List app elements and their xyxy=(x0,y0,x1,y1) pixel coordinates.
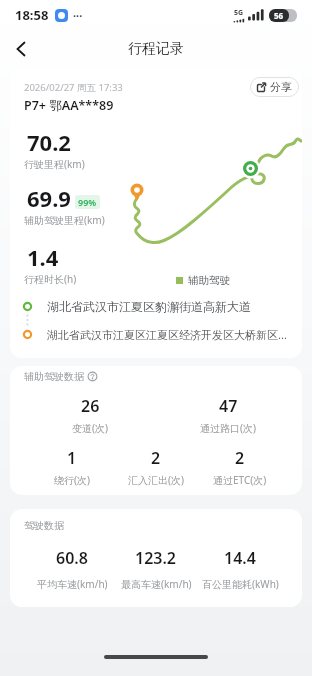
staticText: 2026/02/27 周五 17:33 xyxy=(24,81,123,94)
staticText: 18:58 xyxy=(15,6,49,24)
staticText: 60.8 xyxy=(56,547,88,569)
staticText: 99% xyxy=(78,196,97,208)
staticText: 47 xyxy=(219,395,238,417)
staticText: 湖北省武汉市江夏区江夏区经济开发区大桥新区... xyxy=(47,327,287,342)
staticText: 2 xyxy=(235,447,245,469)
staticText: 行程记录 xyxy=(128,40,184,58)
staticText: 通过路口(次) xyxy=(200,421,256,435)
staticText: 行程时长(h) xyxy=(24,272,77,286)
staticText: 最高车速(km/h) xyxy=(121,577,192,591)
staticText: 分享 xyxy=(270,80,292,94)
staticText: 驾驶数据 xyxy=(24,519,64,532)
staticText: 汇入汇出(次) xyxy=(128,473,184,487)
staticText: 26 xyxy=(81,395,100,417)
staticText: 行驶里程(km) xyxy=(24,157,85,171)
staticText: 1 xyxy=(67,447,77,469)
staticText: 辅助驾驶数据 xyxy=(24,370,84,383)
staticText: 辅助驾驶 xyxy=(188,274,230,287)
staticText: 56 xyxy=(274,10,284,21)
staticText: 70.2 xyxy=(27,127,71,157)
staticText: 2 xyxy=(151,447,161,469)
staticText: P7+ 鄂AA***89 xyxy=(24,97,114,114)
staticText: 1.4 xyxy=(27,242,59,272)
staticText: 14.4 xyxy=(224,547,256,569)
staticText: 平均车速(km/h) xyxy=(37,577,108,591)
staticText: 变道(次) xyxy=(72,421,108,435)
staticText: 69.9 xyxy=(27,183,71,213)
staticText: 通过ETC(次) xyxy=(213,473,267,487)
staticText: ··· xyxy=(73,8,83,23)
staticText: 湖北省武汉市江夏区豹澥街道高新大道 xyxy=(47,299,251,314)
staticText: 百公里能耗(kWh) xyxy=(202,577,279,591)
staticText: 5G xyxy=(234,8,244,18)
staticText: 123.2 xyxy=(135,547,177,569)
staticText: 绕行(次) xyxy=(54,473,90,487)
staticText: 辅助驾驶里程(km) xyxy=(24,213,105,227)
